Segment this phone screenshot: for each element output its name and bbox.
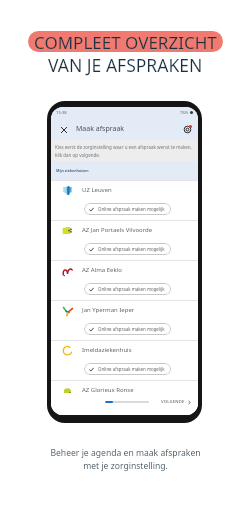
button[interactable]: AZ Jan Portaels Vilvoorde [51, 220, 198, 260]
button[interactable]: Meldingen [182, 124, 193, 135]
staticText: klik dan op volgende. [55, 152, 100, 158]
staticText: 15:38 [56, 110, 67, 116]
button[interactable]: AZ Glorieux Ronse [51, 380, 198, 415]
button[interactable]: AZ Alma Eeklo [51, 260, 198, 300]
staticText: UZ Leuven [82, 186, 112, 194]
staticText: met je zorginstelling. [83, 460, 168, 472]
button[interactable]: UZ Leuven [51, 180, 198, 220]
staticText: Online afspraak maken mogelijk [98, 206, 165, 212]
staticText: AZ Glorieux Ronse [82, 386, 134, 394]
staticText: Jan Yperman Ieper [82, 306, 135, 314]
staticText: Online afspraak maken mogelijk [98, 366, 165, 372]
button[interactable]: Jan Yperman Ieper [51, 300, 198, 340]
staticText: Kies eerst de zorginstelling waar u een … [55, 144, 192, 150]
staticText: Online afspraak maken mogelijk [98, 326, 165, 332]
button[interactable]: Imeldaziekenhuis [51, 340, 198, 380]
button[interactable]: VOLGENDE [160, 397, 193, 407]
staticText: Maak afspraak [76, 124, 125, 134]
staticText: VOLGENDE [161, 399, 185, 405]
staticText: Online afspraak maken mogelijk [98, 286, 165, 292]
staticText: COMPLEET OVERZICHT [34, 31, 217, 52]
staticText: Mijn ziekenhuizen [56, 168, 89, 173]
staticText: AZ Jan Portaels Vilvoorde [82, 226, 153, 234]
staticText: Beheer je agenda en maak afspraken [50, 447, 201, 459]
staticText: 76% [180, 110, 189, 116]
staticText: AZ Alma Eeklo [82, 266, 122, 274]
staticText: Online afspraak maken mogelijk [98, 246, 165, 252]
staticText: VAN JE AFSPRAKEN [48, 53, 203, 77]
staticText: Imeldaziekenhuis [82, 346, 132, 354]
button[interactable]: Sluiten [58, 124, 69, 135]
